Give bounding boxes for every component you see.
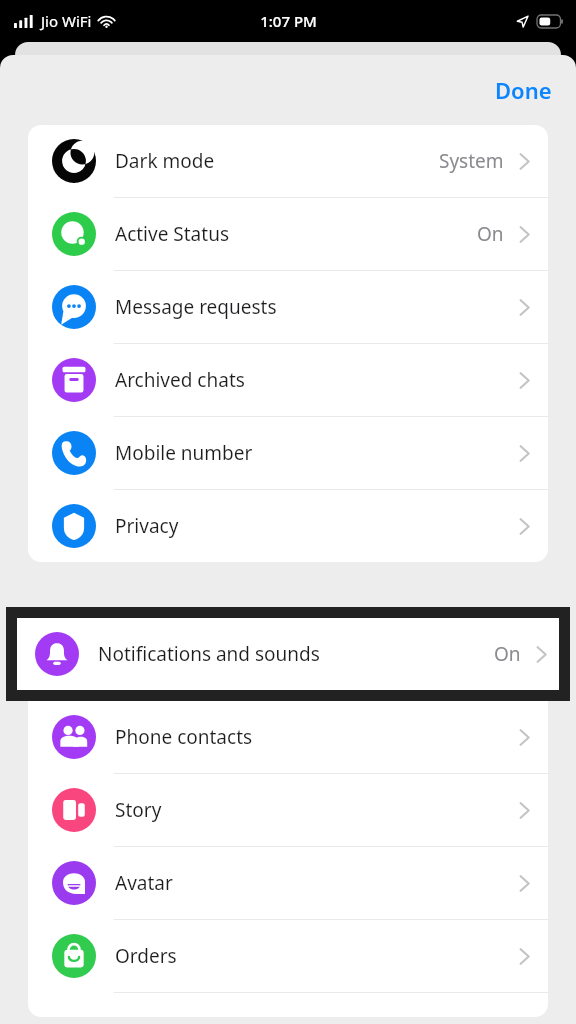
staticText: Message requests [115, 294, 277, 320]
button[interactable]: Orders [28, 920, 548, 993]
button[interactable]: Privacy [28, 490, 548, 562]
staticText: 1:07 PM [260, 11, 317, 31]
staticText: Phone contacts [115, 724, 253, 750]
staticText: Active Status [115, 221, 229, 247]
button[interactable]: Avatar [28, 847, 548, 920]
button[interactable]: Notifications and sounds [17, 618, 559, 690]
staticText: Done [495, 75, 552, 105]
button[interactable]: Message requests [28, 271, 548, 344]
staticText: Privacy [115, 513, 179, 539]
staticText: Story [115, 797, 162, 823]
staticText: Notifications and sounds [98, 641, 320, 667]
staticText: On [477, 221, 504, 247]
button[interactable]: Archived chats [28, 344, 548, 417]
staticText: Dark mode [115, 148, 215, 174]
button[interactable]: Phone contacts [28, 701, 548, 774]
staticText: Archived chats [115, 367, 245, 393]
staticText: On [494, 641, 521, 667]
staticText: Avatar [115, 870, 173, 896]
staticText: System [439, 148, 504, 174]
button[interactable]: Mobile number [28, 417, 548, 490]
staticText: Orders [115, 943, 177, 969]
staticText: Mobile number [115, 440, 253, 466]
staticText: Jio WiFi [41, 11, 92, 31]
button[interactable]: Done [471, 66, 576, 114]
button[interactable]: Dark mode [28, 125, 548, 198]
button[interactable]: Active Status [28, 198, 548, 271]
button[interactable]: Story [28, 774, 548, 847]
